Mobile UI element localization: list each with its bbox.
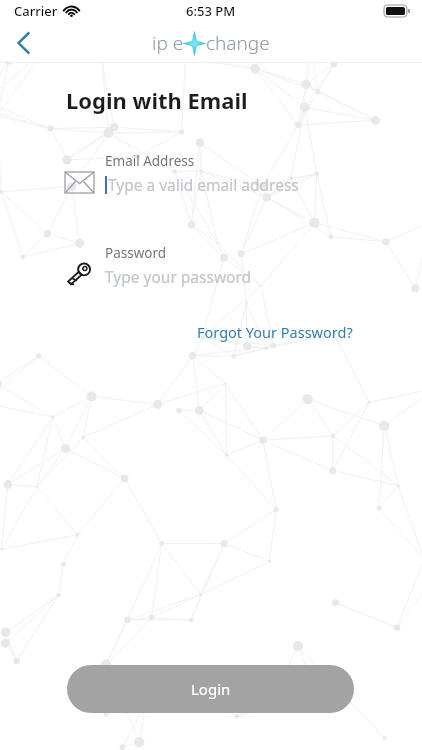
staticText: Type a valid email address <box>108 174 299 195</box>
staticText: Carrier <box>14 2 58 20</box>
staticText: Email Address <box>105 152 195 170</box>
button[interactable]: Back <box>0 22 46 63</box>
button[interactable]: Email Address <box>0 152 422 200</box>
staticText: Forgot Your Password? <box>197 322 353 342</box>
button[interactable]: Forgot Your Password? <box>195 319 355 345</box>
staticText: Password <box>105 244 167 262</box>
staticText: ip e <box>152 30 184 56</box>
staticText: Type your password <box>105 266 252 287</box>
staticText: Login <box>191 679 231 699</box>
staticText: 6:53 PM <box>186 2 236 20</box>
button[interactable]: Password <box>0 244 422 292</box>
button[interactable]: Login <box>67 665 354 713</box>
staticText: change <box>206 30 270 56</box>
staticText: Login with Email <box>66 85 248 115</box>
